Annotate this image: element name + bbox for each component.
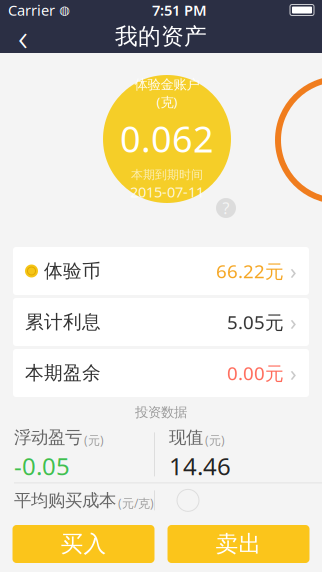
staticText: ›	[284, 359, 297, 387]
staticText: ◍	[55, 3, 69, 17]
staticText: 7:51 PM	[152, 0, 207, 20]
staticText: -0.05	[14, 450, 70, 482]
staticText: 14.46	[169, 450, 231, 482]
staticText: 5.05元	[227, 310, 284, 334]
staticText: ?	[222, 197, 229, 219]
staticText: 0.00元	[227, 361, 284, 385]
staticText: 我的资产	[115, 23, 207, 50]
staticText: (元/克)	[118, 495, 154, 511]
staticText: 买入	[60, 530, 106, 558]
staticText: 本期到期时间	[131, 167, 203, 182]
staticText: 体验金账户	[134, 76, 199, 93]
staticText: ›	[284, 308, 297, 336]
staticText: 累计利息	[25, 310, 101, 333]
staticText: 平均购买成本	[14, 490, 116, 511]
staticText: 本期盈余	[25, 361, 101, 384]
staticText: 0.062	[120, 114, 214, 162]
staticText: 体验币	[44, 259, 101, 282]
staticText: (克)	[156, 93, 177, 110]
staticText: ‹	[18, 12, 28, 61]
button[interactable]: Back	[0, 20, 46, 53]
staticText: 现值	[169, 427, 203, 448]
staticText: 浮动盈亏	[14, 427, 82, 448]
button[interactable]: 体验币	[13, 247, 309, 295]
staticText: 66.22元	[216, 259, 284, 283]
staticText: (元)	[205, 432, 225, 448]
staticText: (元)	[84, 432, 104, 448]
staticText: 投资数据	[135, 404, 187, 420]
staticText: Carrier	[8, 0, 55, 20]
button[interactable]: 累计利息	[13, 298, 309, 346]
button[interactable]: 本期盈余	[13, 349, 309, 397]
button[interactable]: 买入	[12, 525, 154, 563]
staticText: 卖出	[215, 530, 261, 558]
staticText: 2015-07-11	[130, 182, 204, 202]
staticText: ›	[284, 257, 297, 285]
button[interactable]: 卖出	[167, 525, 309, 563]
button[interactable]: Help	[216, 198, 236, 218]
